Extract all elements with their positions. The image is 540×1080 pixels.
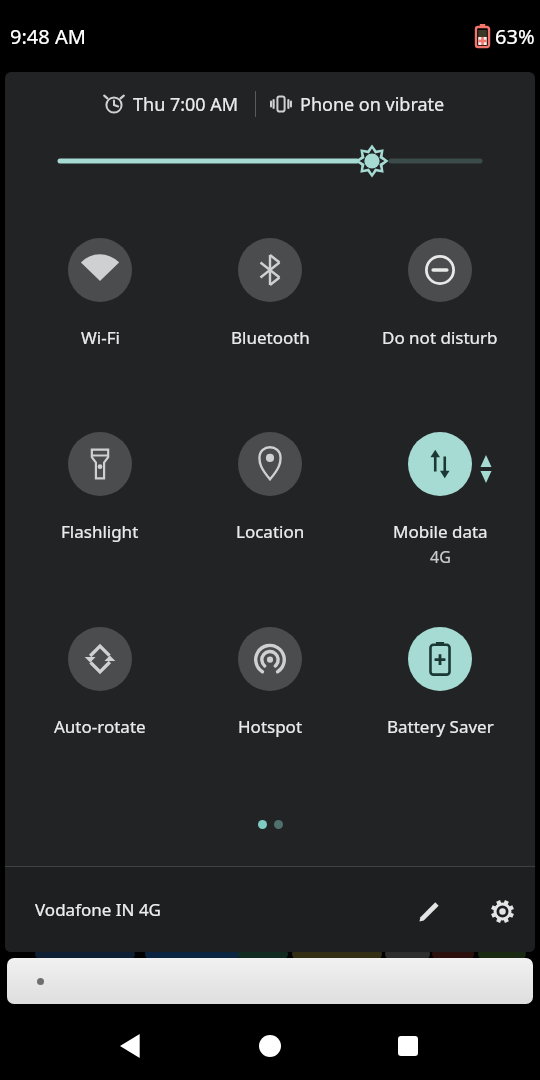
staticText: Thu 7:00 AM <box>133 92 239 117</box>
button[interactable]: Mobile data <box>355 432 525 568</box>
button[interactable]: Location <box>185 432 355 543</box>
staticText: 4G <box>430 546 451 568</box>
staticText: Bluetooth <box>231 326 310 349</box>
staticText: 9:48 AM <box>10 23 86 50</box>
button[interactable]: Do not disturb <box>355 238 525 349</box>
button[interactable]: Flashlight <box>15 432 185 543</box>
staticText: Mobile data <box>393 520 488 543</box>
button[interactable] <box>478 887 526 935</box>
button[interactable]: Auto-rotate <box>15 627 185 738</box>
button[interactable] <box>107 1021 157 1071</box>
button[interactable] <box>7 958 533 1004</box>
staticText: Do not disturb <box>382 326 498 349</box>
button[interactable] <box>245 1021 295 1071</box>
button[interactable]: Wi-Fi <box>15 238 185 349</box>
button[interactable]: Vodafone IN 4G <box>35 898 161 921</box>
button[interactable] <box>383 1021 433 1071</box>
staticText: Wi-Fi <box>81 326 120 349</box>
staticText: 63% <box>495 23 535 50</box>
staticText: Auto-rotate <box>54 715 146 738</box>
button[interactable]: Thu 7:00 AM <box>9 88 535 120</box>
staticText: Flashlight <box>61 520 139 543</box>
button[interactable]: Battery Saver <box>355 627 525 738</box>
staticText: Location <box>236 520 305 543</box>
staticText: Vodafone IN 4G <box>35 898 161 921</box>
button[interactable]: Hotspot <box>185 627 355 738</box>
button[interactable] <box>406 887 454 935</box>
button[interactable]: Bluetooth <box>185 238 355 349</box>
staticText: Hotspot <box>238 715 303 738</box>
staticText: Battery Saver <box>387 715 494 738</box>
staticText: Phone on vibrate <box>300 92 445 117</box>
